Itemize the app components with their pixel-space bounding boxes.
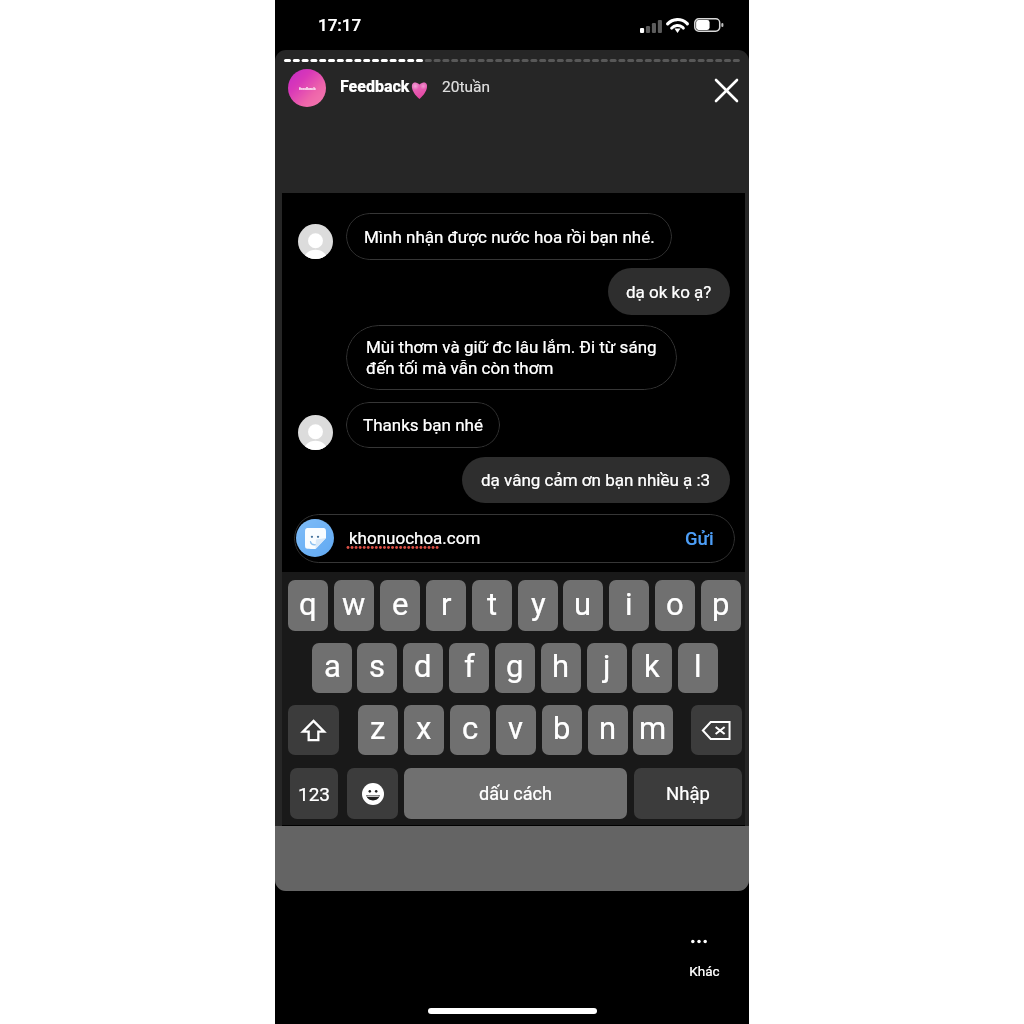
staticText: p [712,586,730,622]
staticText: Mùi thơm và giữ đc lâu lắm. Đi từ sáng đ… [366,337,657,379]
button[interactable]: l [678,643,718,693]
button[interactable]: Shift [288,705,339,755]
staticText: e [392,586,409,622]
button[interactable]: o [655,580,695,631]
staticText: h [552,648,570,684]
button[interactable]: Backspace [691,705,742,755]
staticText: l [694,648,702,684]
button[interactable]: t [472,580,512,631]
staticText: k [644,648,660,684]
button[interactable]: x [404,705,444,755]
button[interactable]: khonuochoa.com [294,514,735,563]
staticText: Nhập [666,783,710,805]
staticText: g [506,648,524,684]
staticText: q [299,586,317,622]
button[interactable]: Mình nhận được nước hoa rồi bạn nhé. [346,213,672,260]
button[interactable]: j [587,643,627,693]
staticText: s [369,648,385,684]
staticText: a [324,648,341,684]
button[interactable]: h [541,643,581,693]
button[interactable]: m [633,705,673,755]
staticText: feedback [299,86,316,91]
button[interactable]: q [288,580,328,631]
button[interactable]: Nhập [634,768,742,819]
staticText: Gửi [685,528,714,550]
button[interactable]: Mùi thơm và giữ đc lâu lắm. Đi từ sáng đ… [346,325,677,390]
staticText: dạ ok ko ạ? [626,282,712,302]
staticText: u [574,586,592,622]
button[interactable]: y [518,580,558,631]
staticText: x [416,710,432,746]
staticText: y [531,586,546,622]
staticText: i [625,586,633,622]
button[interactable]: g [495,643,535,693]
button[interactable]: k [632,643,672,693]
button[interactable]: w [334,580,374,631]
button[interactable]: v [496,705,536,755]
button[interactable]: More options [675,925,735,987]
staticText: 20tuần [442,78,491,96]
button[interactable]: Close story [708,72,744,108]
button[interactable]: dạ ok ko ạ? [608,268,730,315]
button[interactable]: p [701,580,741,631]
staticText: v [508,710,524,746]
button[interactable]: dạ vâng cảm ơn bạn nhiều ạ :3 [462,457,730,503]
button[interactable]: u [563,580,603,631]
button[interactable]: e [380,580,420,631]
staticText: Feedback [340,77,410,96]
staticText: w [342,586,366,622]
button[interactable]: s [357,643,397,693]
button[interactable]: i [609,580,649,631]
button[interactable]: dấu cách [404,768,627,819]
staticText: Mình nhận được nước hoa rồi bạn nhé. [364,227,655,247]
button[interactable]: f [449,643,489,693]
staticText: 123 [298,783,331,805]
staticText: j [603,648,611,684]
staticText: f [464,648,475,684]
staticText: c [462,710,479,746]
staticText: Thanks bạn nhé [363,415,483,435]
staticText: dạ vâng cảm ơn bạn nhiều ạ :3 [481,470,711,490]
button[interactable]: z [358,705,398,755]
staticText: b [553,710,571,746]
staticText: o [666,586,684,622]
button[interactable]: c [450,705,490,755]
button[interactable]: Thanks bạn nhé [346,402,500,448]
button[interactable]: n [588,705,628,755]
staticText: r [441,586,452,622]
staticText: 17:17 [318,15,362,35]
button[interactable]: d [403,643,443,693]
button[interactable]: Gửi [675,522,723,555]
staticText: dấu cách [479,783,552,804]
button[interactable]: b [542,705,582,755]
staticText: d [414,648,432,684]
button[interactable]: 123 [290,768,338,819]
staticText: z [370,710,386,746]
staticText: khonuochoa.com [349,528,481,548]
staticText: Khác [689,963,720,979]
staticText: n [599,710,617,746]
button[interactable]: r [426,580,466,631]
staticText: m [639,710,667,746]
staticText: t [487,586,498,622]
button[interactable]: Emoji [347,768,398,819]
button[interactable]: a [312,643,352,693]
